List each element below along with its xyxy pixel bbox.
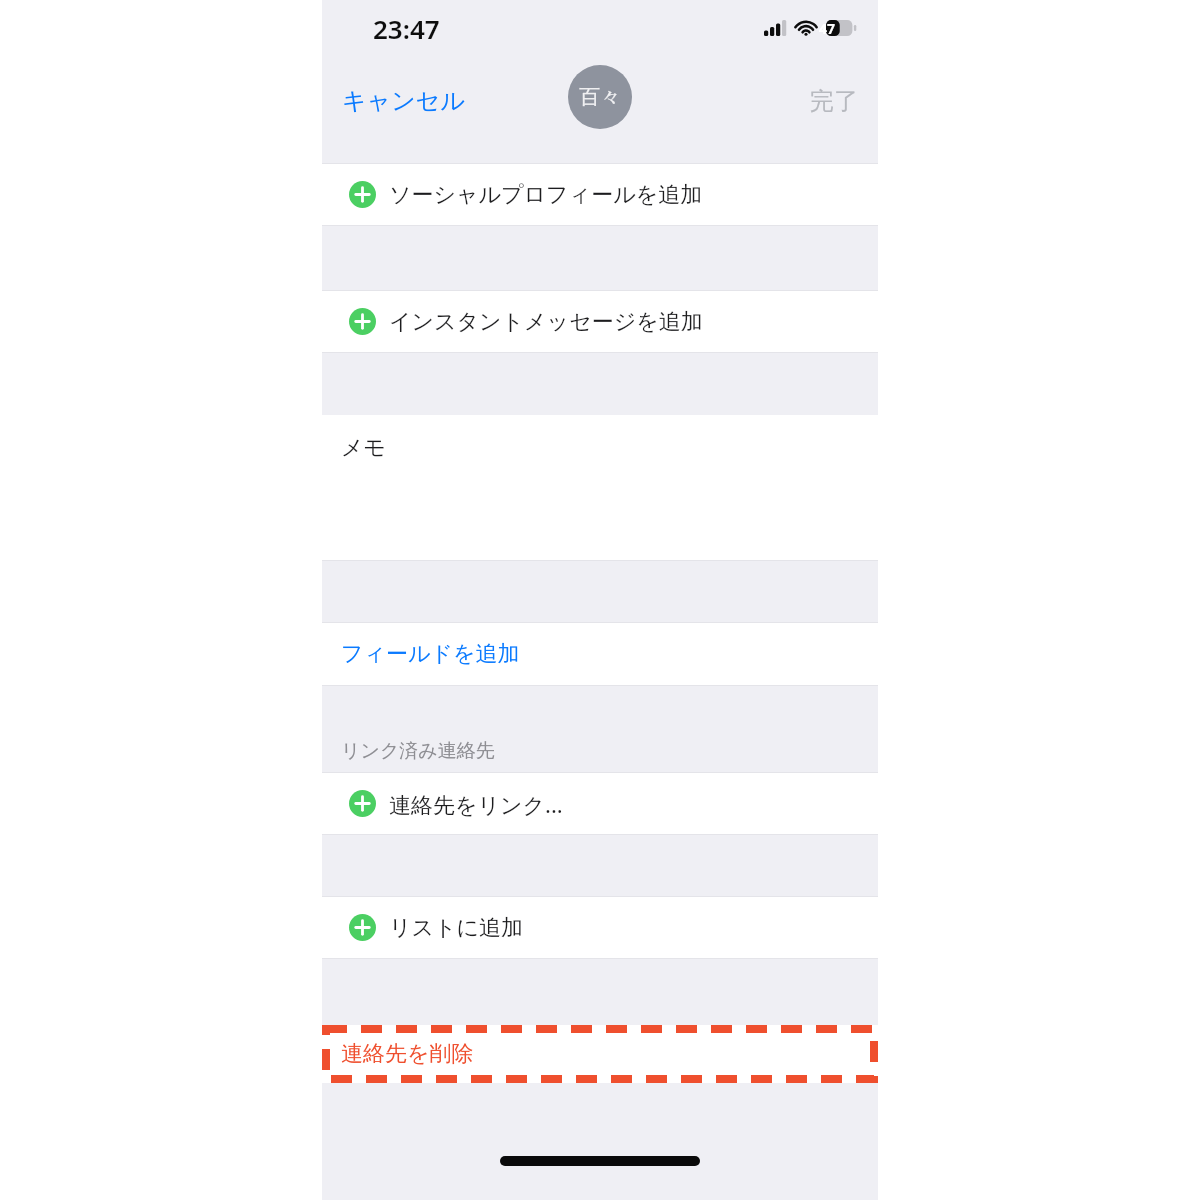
staticText: 47 (819, 19, 836, 38)
staticText: 連絡先をリンク... (389, 789, 563, 819)
button[interactable]: インスタントメッセージを追加 (322, 291, 878, 352)
button[interactable]: リストに追加 (322, 897, 878, 958)
staticText: キャンセル (342, 86, 465, 116)
button[interactable]: メモ (322, 415, 878, 560)
button[interactable]: フィールドを追加 (322, 623, 878, 685)
button[interactable]: キャンセル (330, 78, 477, 124)
button[interactable]: 完了 (798, 78, 870, 124)
staticText: 23:47 (373, 11, 440, 46)
staticText: ソーシャルプロフィールを追加 (389, 181, 703, 209)
button[interactable]: 連絡先を削除 (322, 1025, 878, 1083)
button[interactable]: ソーシャルプロフィールを追加 (322, 164, 878, 225)
staticText: 完了 (810, 86, 858, 116)
staticText: リストに追加 (389, 914, 524, 942)
staticText: 連絡先を削除 (341, 1040, 474, 1068)
button[interactable]: Contact photo (568, 65, 632, 129)
staticText: メモ (341, 434, 387, 462)
staticText: インスタントメッセージを追加 (389, 308, 703, 336)
staticText: リンク済み連絡先 (341, 739, 495, 763)
button[interactable]: 連絡先をリンク... (322, 773, 878, 834)
staticText: フィールドを追加 (341, 640, 520, 668)
staticText: 百々 (579, 84, 621, 110)
